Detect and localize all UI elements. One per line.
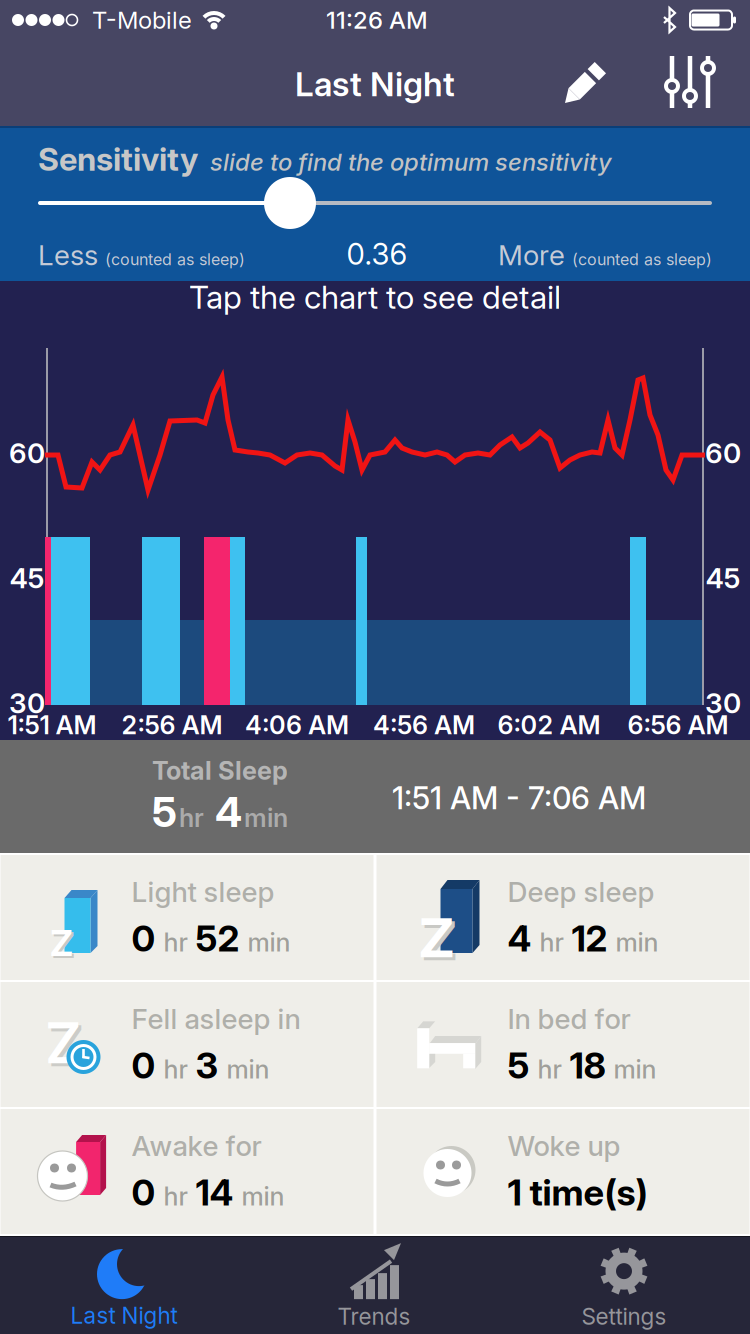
- staticText: 45: [705, 561, 740, 594]
- staticText: 1:51 AM: [7, 710, 96, 740]
- staticText: 30: [9, 686, 45, 719]
- staticText: 6:56 AM: [627, 710, 728, 740]
- button[interactable]: Last Night: [9, 1238, 239, 1334]
- staticText: 14: [195, 1171, 233, 1214]
- button[interactable]: Settings: [509, 1238, 739, 1334]
- staticText: 18: [569, 1044, 605, 1087]
- staticText: 12: [571, 917, 607, 960]
- staticText: 4:56 AM: [373, 710, 475, 740]
- staticText: (counted as sleep): [572, 250, 712, 269]
- staticText: 11:26 AM: [326, 6, 428, 34]
- staticText: slide to find the optimum sensitivity: [210, 148, 612, 176]
- staticText: Sensitivity: [38, 140, 198, 178]
- staticText: min: [615, 927, 658, 957]
- staticText: T-Mobile: [92, 6, 192, 34]
- staticText: Settings: [581, 1303, 666, 1330]
- staticText: hr: [163, 927, 187, 957]
- staticText: hr: [163, 1054, 187, 1084]
- staticText: 0.36: [346, 237, 407, 271]
- button[interactable]: [664, 55, 716, 109]
- staticText: min: [613, 1054, 656, 1084]
- staticText: time(s): [529, 1171, 647, 1214]
- staticText: 0: [131, 917, 155, 960]
- staticText: Total Sleep: [152, 756, 288, 786]
- staticText: Deep sleep: [507, 875, 654, 908]
- staticText: z: [419, 891, 459, 976]
- button[interactable]: Z: [0, 982, 373, 1107]
- staticText: 60: [705, 436, 741, 469]
- staticText: Last Night: [295, 64, 455, 104]
- staticText: 2:56 AM: [121, 710, 222, 740]
- staticText: 4: [507, 917, 531, 960]
- staticText: 0: [131, 1044, 155, 1087]
- staticText: Fell asleep in: [131, 1002, 300, 1035]
- staticText: 30: [705, 686, 741, 719]
- staticText: 1:51 AM - 7:06 AM: [392, 780, 646, 816]
- staticText: 1: [507, 1171, 521, 1214]
- staticText: 45: [9, 561, 44, 594]
- staticText: Trends: [337, 1303, 410, 1330]
- staticText: Light sleep: [131, 875, 274, 908]
- staticText: z: [48, 911, 74, 967]
- staticText: 0: [131, 1171, 155, 1214]
- staticText: 60: [9, 436, 45, 469]
- staticText: hr: [163, 1181, 187, 1211]
- staticText: hr: [537, 1054, 561, 1084]
- staticText: z: [50, 913, 76, 969]
- staticText: (counted as sleep): [105, 250, 245, 269]
- button[interactable]: [38, 176, 712, 230]
- button[interactable]: Woke up: [376, 1109, 749, 1234]
- staticText: 5: [152, 788, 177, 836]
- staticText: Tap the chart to see detail: [189, 278, 561, 316]
- button[interactable]: Trends: [259, 1238, 489, 1334]
- staticText: min: [241, 1181, 284, 1211]
- staticText: More: [498, 238, 565, 271]
- staticText: Awake for: [131, 1129, 261, 1162]
- staticText: Last Night: [70, 1302, 177, 1329]
- staticText: hr: [539, 927, 563, 957]
- staticText: In bed for: [507, 1002, 630, 1035]
- button[interactable]: Awake for: [0, 1109, 373, 1234]
- staticText: Z: [45, 1010, 82, 1076]
- staticText: 6:02 AM: [497, 710, 600, 740]
- staticText: min: [226, 1054, 269, 1084]
- staticText: Less: [38, 238, 98, 271]
- button[interactable]: z: [0, 855, 373, 980]
- staticText: 4: [206, 788, 242, 836]
- staticText: min: [244, 803, 288, 833]
- staticText: min: [247, 927, 290, 957]
- staticText: Z: [48, 1013, 85, 1079]
- staticText: Woke up: [507, 1129, 620, 1162]
- button[interactable]: [559, 56, 611, 108]
- button[interactable]: z: [376, 855, 749, 980]
- staticText: 3: [195, 1044, 218, 1087]
- staticText: 52: [195, 917, 239, 960]
- staticText: 4:06 AM: [245, 710, 349, 740]
- staticText: hr: [179, 803, 204, 833]
- button[interactable]: [46, 348, 704, 728]
- staticText: 5: [507, 1044, 529, 1087]
- staticText: z: [416, 888, 456, 973]
- button[interactable]: In bed for: [376, 982, 749, 1107]
